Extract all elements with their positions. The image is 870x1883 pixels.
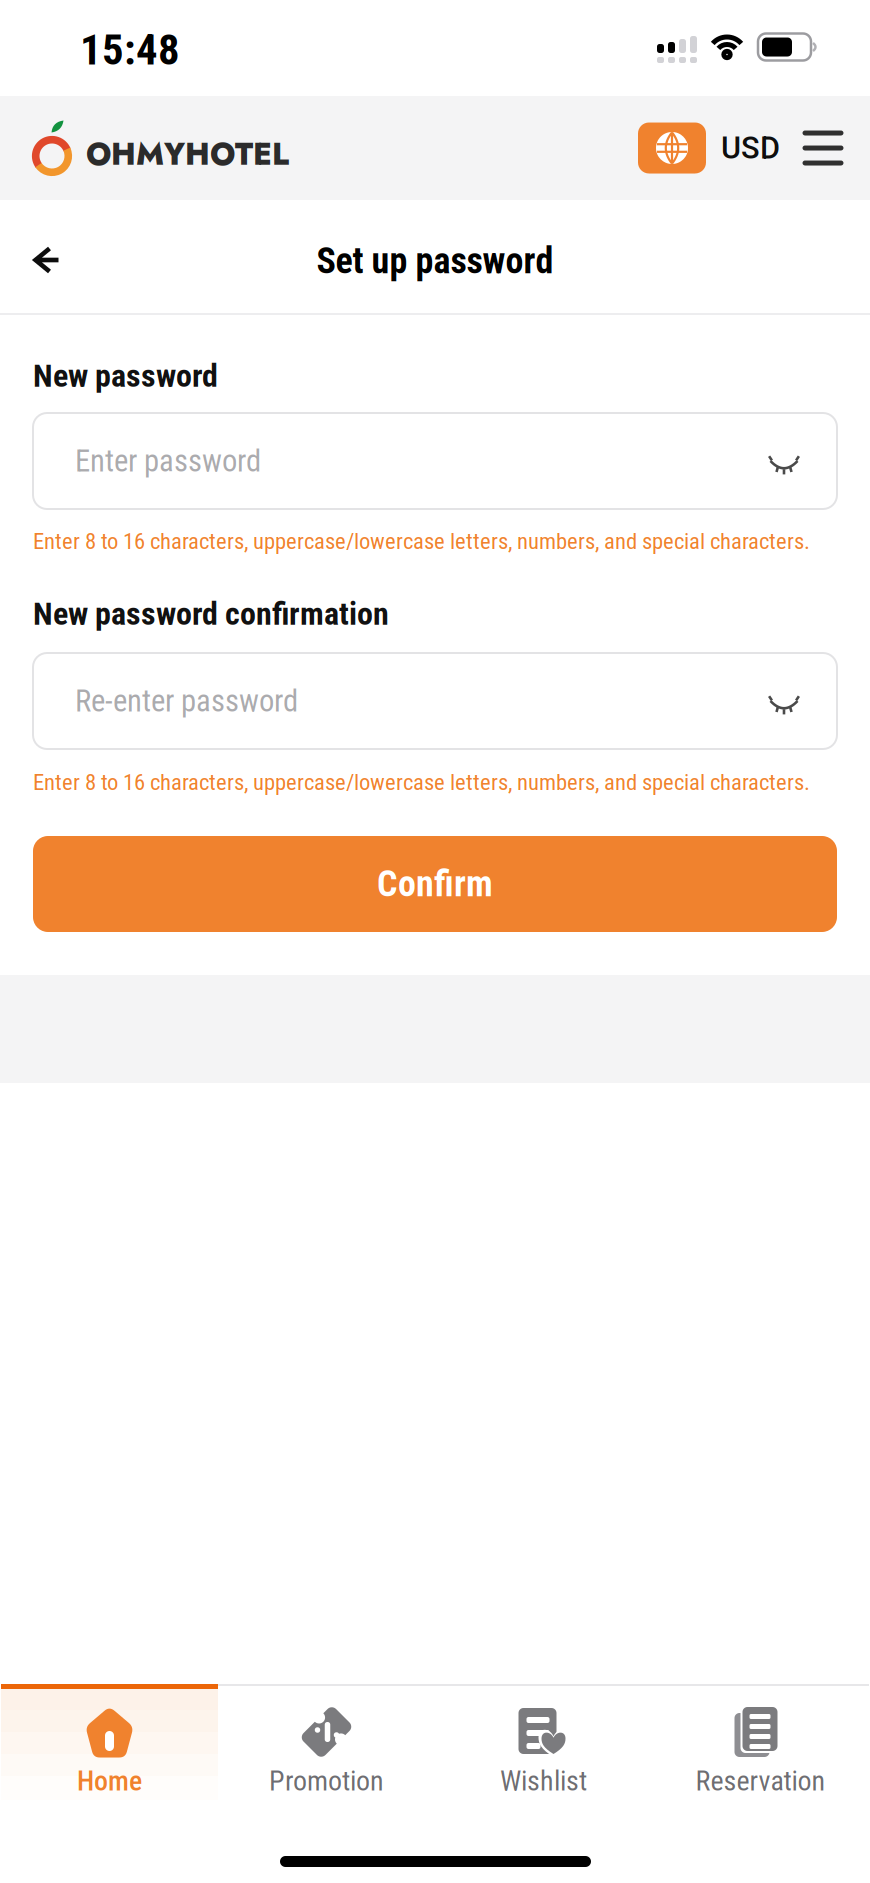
button[interactable]: Confirm <box>33 836 837 932</box>
button[interactable]: Currency USD <box>721 113 793 183</box>
staticText: Re-enter password <box>75 683 298 719</box>
staticText: Confirm <box>377 863 493 905</box>
staticText: Enter 8 to 16 characters, uppercase/lowe… <box>33 769 810 796</box>
staticText: OHMYHOTEL <box>86 132 289 176</box>
staticText: 15:48 <box>80 25 180 75</box>
staticText: Home <box>77 1765 142 1797</box>
button[interactable]: Show password <box>748 430 820 502</box>
button[interactable]: OHMYHOTEL home <box>32 113 302 183</box>
staticText: Reservation <box>695 1765 825 1797</box>
button[interactable]: Promotion <box>218 1684 435 1800</box>
staticText: Enter password <box>75 443 261 479</box>
staticText: USD <box>721 130 780 166</box>
staticText: Set up password <box>316 240 553 282</box>
staticText: Promotion <box>269 1765 384 1797</box>
button[interactable]: Reservation <box>652 1684 869 1800</box>
staticText: Wishlist <box>500 1765 587 1797</box>
staticText: New password confirmation <box>33 595 389 632</box>
button[interactable]: Change language <box>630 113 714 183</box>
staticText: Enter 8 to 16 characters, uppercase/lowe… <box>33 528 810 555</box>
button[interactable]: Menu <box>790 113 856 183</box>
staticText: New password <box>33 357 218 394</box>
button[interactable]: Show password <box>748 670 820 742</box>
button[interactable]: Home <box>1 1684 218 1800</box>
button[interactable]: Wishlist <box>435 1684 652 1800</box>
button[interactable]: Back <box>11 224 83 296</box>
